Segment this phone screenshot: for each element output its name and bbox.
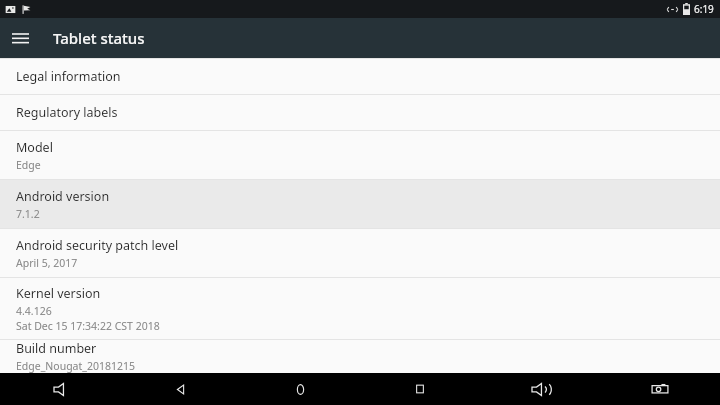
button[interactable]: Recent apps (360, 373, 480, 405)
staticText: April 5, 2017 (16, 256, 78, 270)
button[interactable]: Model (0, 131, 720, 179)
staticText: Regulatory labels (16, 104, 118, 121)
button[interactable]: Regulatory labels (0, 95, 720, 130)
button[interactable]: Volume down (0, 373, 120, 405)
staticText: Android version (16, 188, 110, 205)
button[interactable]: Android security patch level (0, 229, 720, 277)
staticText: Sat Dec 15 17:34:22 CST 2018 (16, 319, 160, 333)
button[interactable]: Volume up (480, 373, 600, 405)
staticText: Kernel version (16, 285, 101, 302)
staticText: Edge_Nougat_20181215 (16, 359, 136, 373)
staticText: Build number (16, 340, 97, 357)
button[interactable]: Kernel version (0, 278, 720, 339)
button[interactable]: Home (240, 373, 360, 405)
staticText: 6:19 (694, 2, 714, 16)
button[interactable]: Build number (0, 340, 720, 373)
button[interactable]: Android version (0, 180, 720, 228)
staticText: Edge (16, 158, 41, 172)
staticText: 4.4.126 (16, 304, 52, 318)
button[interactable]: Open navigation drawer (0, 18, 40, 58)
button[interactable]: Legal information (0, 59, 720, 94)
staticText: 7.1.2 (16, 207, 40, 221)
button[interactable]: Screenshot (600, 373, 720, 405)
button[interactable]: Back (120, 373, 240, 405)
staticText: Android security patch level (16, 237, 179, 254)
staticText: Legal information (16, 68, 121, 85)
staticText: Tablet status (53, 28, 145, 48)
staticText: Model (16, 139, 53, 156)
